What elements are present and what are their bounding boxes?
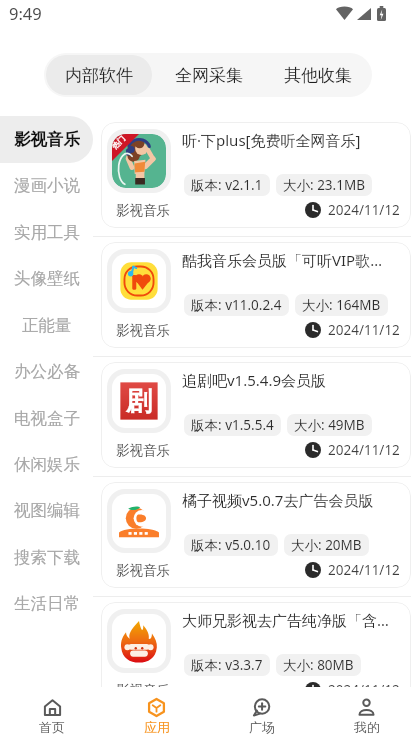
button[interactable]: 剧 bbox=[101, 362, 411, 468]
staticText: 2024/11/12 bbox=[328, 681, 400, 699]
staticText: 搜索下载 bbox=[14, 547, 80, 568]
button[interactable]: 实用工具 bbox=[0, 209, 93, 256]
staticText: 头像壁纸 bbox=[14, 268, 80, 289]
staticText: 大小: 49MB bbox=[294, 416, 365, 434]
button[interactable]: 酷我音乐会员版「可听VIP歌… bbox=[101, 242, 411, 348]
staticText: 影视音乐 bbox=[116, 202, 170, 219]
staticText: 大师兄影视去广告纯净版「含… bbox=[182, 610, 389, 630]
staticText: 电视盒子 bbox=[14, 408, 80, 429]
staticText: 热门 bbox=[112, 134, 127, 151]
staticText: 2024/11/12 bbox=[328, 321, 400, 339]
staticText: 大小: 80MB bbox=[283, 656, 354, 674]
button[interactable]: 休闲娱乐 bbox=[0, 441, 93, 488]
staticText: 其他收集 bbox=[284, 65, 352, 86]
button[interactable]: 其他收集 bbox=[265, 55, 370, 95]
button[interactable]: 热门 bbox=[101, 122, 411, 228]
staticText: 正能量 bbox=[22, 315, 72, 336]
button[interactable]: 广场 bbox=[209, 687, 314, 745]
staticText: 影视音乐 bbox=[116, 562, 170, 579]
button[interactable]: 全网采集 bbox=[156, 55, 261, 95]
staticText: 影视音乐 bbox=[116, 442, 170, 459]
staticText: 版本: v3.3.7 bbox=[191, 656, 263, 674]
staticText: 生活日常 bbox=[14, 593, 80, 614]
staticText: 办公必备 bbox=[14, 361, 80, 382]
staticText: 酷我音乐会员版「可听VIP歌… bbox=[182, 250, 383, 270]
button[interactable]: 影视音乐 bbox=[0, 116, 93, 163]
staticText: 影视音乐 bbox=[14, 129, 80, 150]
staticText: 内部软件 bbox=[65, 65, 133, 86]
staticText: 版本: v5.0.10 bbox=[191, 536, 271, 554]
staticText: 广场 bbox=[249, 719, 275, 735]
staticText: 我的 bbox=[354, 719, 380, 735]
button[interactable]: 橘子视频v5.0.7去广告会员版 bbox=[101, 482, 411, 588]
staticText: 影视音乐 bbox=[116, 682, 170, 699]
staticText: 休闲娱乐 bbox=[14, 454, 80, 475]
staticText: 大小: 20MB bbox=[291, 536, 362, 554]
staticText: 视图编辑 bbox=[14, 500, 80, 521]
button[interactable]: 生活日常 bbox=[0, 580, 93, 627]
button[interactable]: 头像壁纸 bbox=[0, 255, 93, 302]
staticText: 2024/11/12 bbox=[328, 441, 400, 459]
button[interactable]: 应用 bbox=[104, 687, 209, 745]
staticText: 漫画小说 bbox=[14, 175, 80, 196]
button[interactable]: 办公必备 bbox=[0, 348, 93, 395]
staticText: 2024/11/12 bbox=[328, 201, 400, 219]
staticText: 橘子视频v5.0.7去广告会员版 bbox=[182, 490, 374, 510]
staticText: 首页 bbox=[39, 719, 65, 735]
button[interactable]: 搜索下载 bbox=[0, 534, 93, 581]
staticText: 版本: v2.1.1 bbox=[191, 176, 263, 194]
staticText: 听·下plus[免费听全网音乐] bbox=[182, 130, 361, 150]
staticText: 影视音乐 bbox=[116, 322, 170, 339]
button[interactable]: 漫画小说 bbox=[0, 162, 93, 209]
staticText: 剧 bbox=[126, 385, 152, 418]
button[interactable]: 正能量 bbox=[0, 302, 93, 349]
staticText: 9:49 bbox=[9, 2, 42, 24]
button[interactable]: 我的 bbox=[314, 687, 419, 745]
button[interactable]: 视图编辑 bbox=[0, 487, 93, 534]
staticText: 大小: 164MB bbox=[302, 296, 381, 314]
staticText: 应用 bbox=[144, 719, 170, 735]
staticText: 版本: v11.0.2.4 bbox=[191, 296, 282, 314]
staticText: 实用工具 bbox=[14, 222, 80, 243]
staticText: 2024/11/12 bbox=[328, 561, 400, 579]
staticText: 全网采集 bbox=[175, 65, 243, 86]
staticText: 版本: v1.5.5.4 bbox=[191, 416, 274, 434]
staticText: 大小: 23.1MB bbox=[283, 176, 365, 194]
button[interactable]: 电视盒子 bbox=[0, 395, 93, 442]
button[interactable]: 内部软件 bbox=[46, 55, 152, 95]
staticText: 追剧吧v1.5.4.9会员版 bbox=[182, 370, 327, 390]
button[interactable]: 首页 bbox=[0, 687, 104, 745]
button[interactable]: 大师兄影视去广告纯净版「含… bbox=[101, 602, 411, 708]
